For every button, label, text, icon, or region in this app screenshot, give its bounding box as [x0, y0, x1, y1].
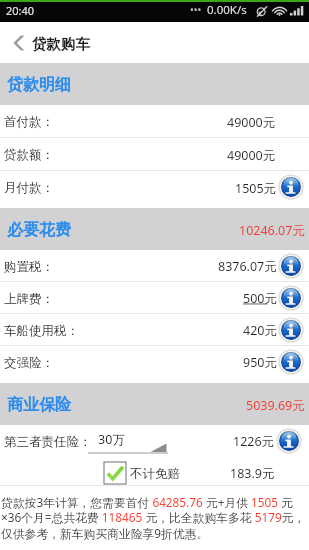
- staticText: 10246.07元: [239, 222, 305, 239]
- staticText: 月付款：: [4, 180, 54, 196]
- staticText: 车船使用税：: [4, 323, 79, 339]
- staticText: 贷款额：: [4, 147, 54, 163]
- staticText: 8376.07元: [218, 258, 277, 275]
- staticText: 49000元: [227, 114, 276, 131]
- staticText: 500元: [243, 290, 277, 307]
- button[interactable]: 月付款：: [0, 171, 309, 203]
- button[interactable]: Select coverage: [88, 428, 168, 454]
- staticText: 183.9元: [230, 465, 275, 482]
- staticText: 0.00K/s: [207, 2, 247, 18]
- button[interactable]: 首付款：: [0, 105, 309, 137]
- staticText: 贷款明细: [7, 75, 71, 95]
- staticText: 1505元: [235, 180, 277, 197]
- staticText: 首付款：: [4, 114, 54, 130]
- staticText: 5039.69元: [246, 397, 305, 414]
- staticText: 贷款购车: [32, 35, 90, 53]
- staticText: 950元: [243, 354, 277, 371]
- staticText: 1226元: [233, 433, 275, 450]
- staticText: 49000元: [227, 147, 276, 164]
- staticText: 不计免赔: [130, 466, 180, 482]
- staticText: 必要花费: [7, 220, 71, 240]
- button[interactable]: 车船使用税：: [0, 314, 309, 345]
- staticText: 20:40: [6, 3, 35, 18]
- staticText: 上牌费：: [4, 291, 54, 307]
- button[interactable]: Back: [0, 22, 32, 63]
- button[interactable]: Toggle deductible: [104, 462, 126, 484]
- staticText: 第三者责任险：: [4, 434, 92, 450]
- staticText: 交强险：: [4, 355, 54, 371]
- staticText: 购置税：: [4, 259, 54, 275]
- staticText: 商业保险: [7, 395, 71, 415]
- button[interactable]: 交强险：: [0, 346, 309, 377]
- button[interactable]: 贷款额：: [0, 138, 309, 170]
- staticText: 420元: [243, 322, 277, 339]
- staticText: 贷款按3年计算，您需要首付 64285.76 元+月供 1505 元×36个月=…: [1, 494, 308, 541]
- button[interactable]: 购置税：: [0, 250, 309, 281]
- staticText: 30万: [98, 431, 125, 448]
- button[interactable]: 上牌费：: [0, 282, 309, 313]
- staticText: •••: [190, 3, 202, 17]
